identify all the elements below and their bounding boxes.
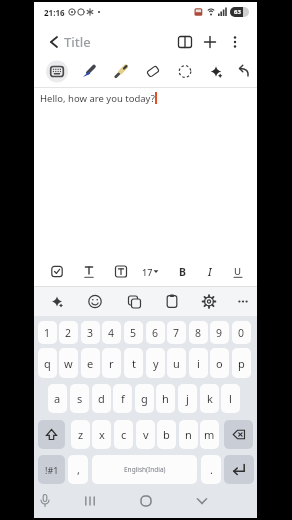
staticText: , <box>77 462 80 477</box>
button[interactable] <box>134 489 158 513</box>
button[interactable] <box>46 290 68 312</box>
button[interactable]: v <box>136 420 155 449</box>
staticText: 0 <box>238 326 245 340</box>
button[interactable] <box>206 60 228 82</box>
button[interactable]: Title <box>64 25 91 59</box>
button[interactable]: q <box>38 348 57 378</box>
button[interactable] <box>46 260 68 282</box>
button[interactable]: m <box>200 420 219 449</box>
staticText: e <box>87 356 94 371</box>
button[interactable]: 2 <box>59 321 78 344</box>
staticText: c <box>121 427 127 442</box>
button[interactable]: i <box>189 348 208 378</box>
staticText: l <box>229 391 232 406</box>
staticText: w <box>64 356 73 371</box>
staticText: . <box>210 462 213 477</box>
button[interactable] <box>78 260 100 282</box>
staticText: d <box>98 391 105 406</box>
button[interactable] <box>38 420 65 449</box>
button[interactable] <box>238 260 260 282</box>
staticText: 8 <box>195 326 202 340</box>
button[interactable] <box>206 260 228 282</box>
button[interactable] <box>227 31 243 47</box>
staticText: i <box>197 356 200 371</box>
button[interactable]: g <box>135 384 154 413</box>
button[interactable]: 5 <box>124 321 143 344</box>
staticText: Title <box>64 33 91 51</box>
button[interactable]: 1 <box>38 321 57 344</box>
staticText: z <box>78 427 84 442</box>
button[interactable] <box>43 31 59 47</box>
button[interactable]: c <box>114 420 133 449</box>
staticText: t <box>132 356 136 371</box>
button[interactable]: 7 <box>167 321 186 344</box>
button[interactable] <box>142 260 164 282</box>
staticText: n <box>185 427 192 442</box>
button[interactable] <box>110 60 132 82</box>
button[interactable]: d <box>92 384 111 413</box>
button[interactable]: e <box>81 348 100 378</box>
button[interactable]: l <box>221 384 240 413</box>
button[interactable]: w <box>59 348 78 378</box>
button[interactable] <box>78 60 100 82</box>
button[interactable]: r <box>102 348 121 378</box>
staticText: b <box>163 427 170 442</box>
button[interactable]: !#1 <box>38 455 65 484</box>
staticText: 63 <box>234 8 241 16</box>
button[interactable] <box>123 290 145 312</box>
button[interactable] <box>142 60 164 82</box>
button[interactable] <box>161 290 183 312</box>
staticText: U <box>234 265 242 278</box>
button[interactable]: k <box>200 384 219 413</box>
staticText: a <box>54 391 61 406</box>
button[interactable]: p <box>232 348 251 378</box>
staticText: Hello, how are you today? <box>40 92 155 105</box>
button[interactable]: b <box>157 420 176 449</box>
button[interactable]: t <box>124 348 143 378</box>
button[interactable]: o <box>210 348 229 378</box>
staticText: 9 <box>216 326 223 340</box>
button[interactable]: f <box>113 384 132 413</box>
button[interactable]: u <box>167 348 186 378</box>
staticText: u <box>173 356 180 371</box>
button[interactable]: y <box>146 348 165 378</box>
button[interactable]: Hello, how are you today? <box>34 88 257 257</box>
button[interactable] <box>224 420 253 449</box>
button[interactable] <box>110 260 132 282</box>
button[interactable] <box>33 489 57 513</box>
button[interactable]: 0 <box>232 321 251 344</box>
button[interactable]: . <box>201 455 221 484</box>
button[interactable] <box>238 60 260 82</box>
button[interactable]: s <box>70 384 89 413</box>
button[interactable] <box>46 60 68 82</box>
button[interactable]: h <box>156 384 175 413</box>
button[interactable] <box>202 31 218 47</box>
button[interactable]: 6 <box>146 321 165 344</box>
staticText: m <box>204 427 215 442</box>
button[interactable] <box>78 489 102 513</box>
button[interactable] <box>224 455 254 484</box>
button[interactable]: 8 <box>189 321 208 344</box>
button[interactable] <box>232 290 254 312</box>
button[interactable]: 3 <box>81 321 100 344</box>
button[interactable]: x <box>92 420 111 449</box>
button[interactable]: , <box>68 455 88 484</box>
staticText: 1 <box>44 326 51 340</box>
button[interactable] <box>177 31 193 47</box>
staticText: o <box>216 356 223 371</box>
button[interactable]: z <box>71 420 90 449</box>
staticText: 4 <box>108 326 115 340</box>
button[interactable] <box>198 290 220 312</box>
button[interactable] <box>174 60 196 82</box>
button[interactable] <box>190 489 214 513</box>
button[interactable] <box>84 290 106 312</box>
button[interactable]: a <box>48 384 67 413</box>
button[interactable] <box>174 260 196 282</box>
button[interactable]: 4 <box>102 321 121 344</box>
staticText: 17 <box>142 266 153 278</box>
staticText: v <box>143 427 149 442</box>
button[interactable]: j <box>178 384 197 413</box>
button[interactable]: n <box>179 420 198 449</box>
button[interactable]: 9 <box>210 321 229 344</box>
button[interactable]: English(India) <box>92 455 197 484</box>
